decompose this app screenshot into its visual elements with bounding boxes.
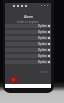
staticText: Option <box>38 24 47 28</box>
staticText: Option <box>38 60 47 64</box>
button[interactable]: Record <box>10 76 17 83</box>
staticText: Option <box>38 42 47 46</box>
staticText: select a ringtone <box>17 20 39 24</box>
staticText: Alarm <box>24 15 33 19</box>
button[interactable]: Option <box>5 42 51 46</box>
staticText: cancel <box>40 70 48 74</box>
button[interactable]: Option <box>5 36 51 40</box>
staticText: Option <box>38 54 47 58</box>
button[interactable]: Option <box>5 30 51 34</box>
button[interactable]: Option <box>5 24 51 28</box>
staticText: Option <box>38 30 47 34</box>
button[interactable]: Option <box>5 54 51 58</box>
button[interactable]: Option <box>5 48 51 52</box>
staticText: Option <box>38 48 47 52</box>
staticText: Option <box>38 36 47 40</box>
button[interactable]: Option <box>5 60 51 64</box>
